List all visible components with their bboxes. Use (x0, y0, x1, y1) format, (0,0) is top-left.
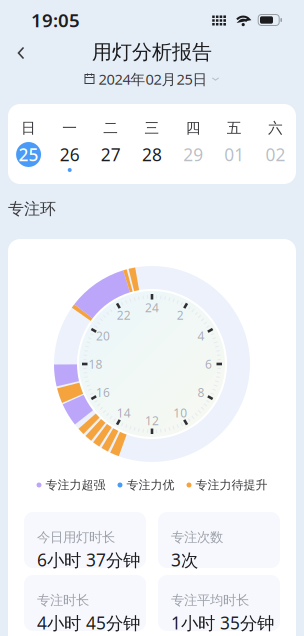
button[interactable]: 29 (173, 142, 214, 172)
staticText: 3次 (171, 548, 198, 571)
staticText: 10 (173, 405, 187, 421)
staticText: 专注平均时长 (171, 592, 249, 608)
staticText: 24 (145, 299, 159, 315)
staticText: 29 (183, 143, 203, 166)
staticText: 02 (265, 143, 285, 166)
staticText: 专注时长 (37, 592, 89, 608)
staticText: 今日用灯时长 (37, 529, 115, 545)
button[interactable]: 28 (131, 142, 172, 172)
staticText: 18 (88, 356, 102, 372)
staticText: 22 (117, 307, 131, 323)
staticText: 用灯分析报告 (92, 40, 212, 64)
staticText: 四 (186, 119, 201, 137)
staticText: 12 (145, 412, 159, 428)
staticText: 20 (96, 328, 110, 344)
staticText: 六 (268, 119, 283, 137)
button[interactable]: Back (6, 38, 36, 68)
button[interactable]: 25 (8, 142, 49, 172)
button[interactable]: 27 (90, 142, 131, 172)
staticText: 28 (142, 143, 162, 166)
button[interactable]: 26 (49, 142, 90, 172)
staticText: 4小时 45分钟 (37, 611, 140, 634)
button[interactable]: 2024年02月25日 (84, 69, 219, 89)
staticText: 日 (21, 119, 36, 137)
staticText: 19:05 (31, 8, 80, 32)
staticText: 8 (197, 384, 204, 400)
staticText: 三 (144, 119, 159, 137)
staticText: 专注次数 (171, 529, 223, 545)
staticText: 专注力优 (126, 478, 174, 492)
button[interactable]: 01 (214, 142, 255, 172)
staticText: 16 (96, 384, 110, 400)
staticText: 一 (62, 119, 77, 137)
staticText: 4 (197, 328, 204, 344)
staticText: 专注力待提升 (195, 478, 267, 492)
staticText: 26 (60, 143, 80, 166)
staticText: 6小时 37分钟 (37, 548, 140, 571)
staticText: 2 (177, 307, 184, 323)
staticText: 专注环 (8, 199, 56, 219)
staticText: 二 (103, 119, 118, 137)
button[interactable]: 02 (255, 142, 296, 172)
staticText: 14 (117, 405, 131, 421)
staticText: 五 (227, 119, 242, 137)
staticText: 6 (205, 356, 212, 372)
staticText: 专注力超强 (45, 478, 105, 492)
staticText: 27 (101, 143, 121, 166)
staticText: 01 (224, 143, 244, 166)
staticText: 1小时 35分钟 (171, 611, 274, 634)
staticText: 25 (19, 143, 39, 166)
staticText: 2024年02月25日 (98, 69, 207, 89)
